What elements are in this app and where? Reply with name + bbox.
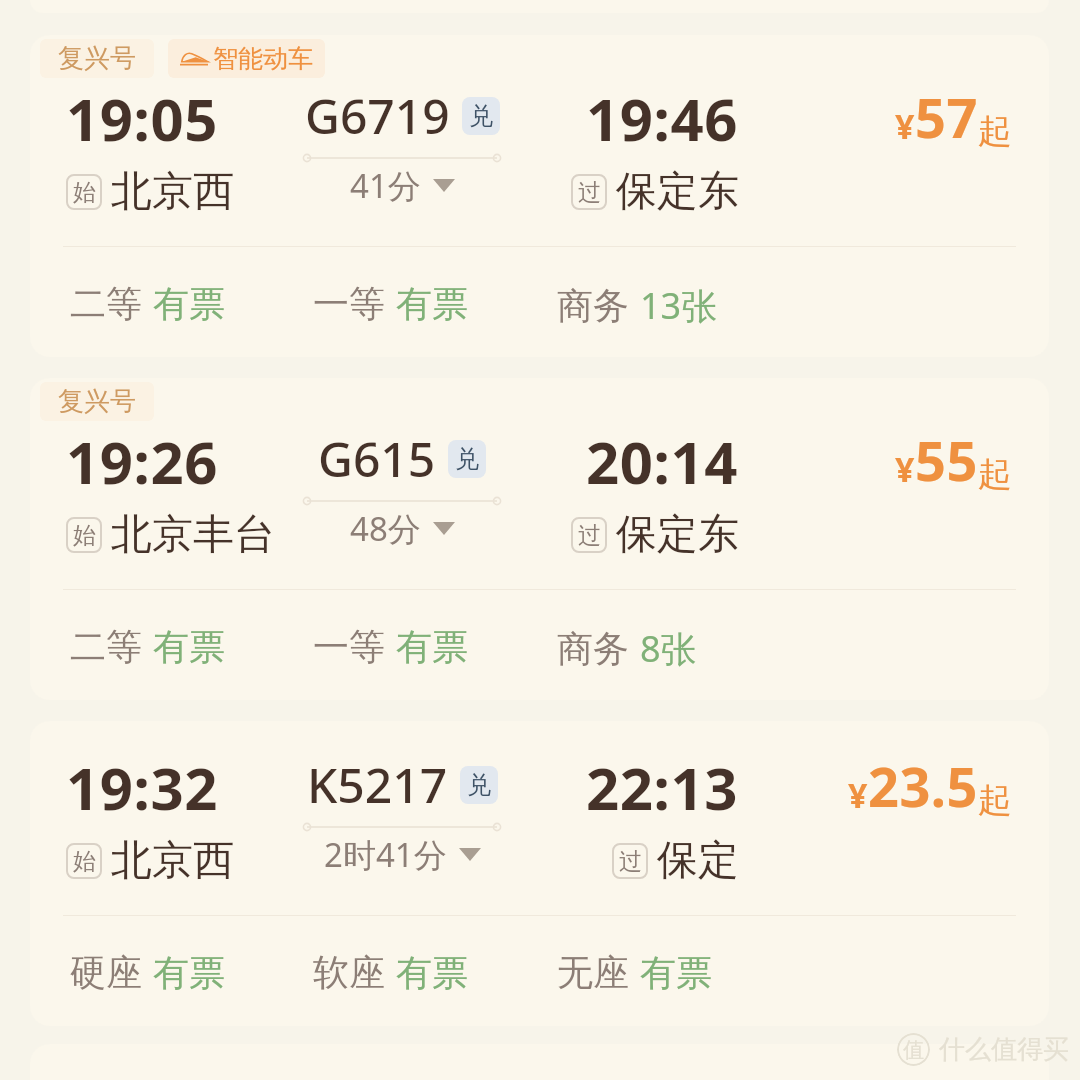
- button[interactable]: 无座: [557, 950, 712, 995]
- staticText: 智能动车: [213, 43, 313, 74]
- staticText: 始: [73, 521, 96, 550]
- staticText: 始: [73, 847, 96, 876]
- staticText: 复兴号: [58, 42, 136, 75]
- staticText: 商务: [557, 283, 629, 328]
- other: 智能动车: [180, 52, 208, 66]
- staticText: G615: [318, 426, 436, 491]
- staticText: 有票: [640, 950, 712, 995]
- staticText: 复兴号: [58, 385, 136, 418]
- staticText: 55: [915, 423, 978, 497]
- button[interactable]: 可兑换积分: [448, 440, 486, 478]
- staticText: 13张: [640, 281, 718, 330]
- button[interactable]: 可兑换积分: [462, 97, 500, 135]
- staticText: 20:14: [586, 422, 739, 501]
- staticText: 保定: [657, 835, 739, 887]
- button[interactable]: 商务: [557, 624, 697, 673]
- staticText: 19:05: [66, 79, 219, 158]
- staticText: 41分: [350, 163, 421, 208]
- other: 展开经停站: [433, 522, 455, 535]
- staticText: 有票: [396, 624, 468, 669]
- staticText: 北京丰台: [111, 509, 275, 561]
- staticText: 软座: [313, 950, 385, 995]
- button[interactable]: 二等: [70, 624, 225, 669]
- button[interactable]: 复兴号: [30, 378, 1049, 700]
- staticText: 始: [73, 178, 96, 207]
- button[interactable]: 一等: [313, 624, 468, 669]
- button[interactable]: 复兴号: [30, 35, 1049, 357]
- staticText: 8张: [640, 624, 697, 673]
- staticText: 48分: [350, 506, 421, 551]
- button[interactable]: 19:32: [30, 721, 1049, 1026]
- button[interactable]: 商务: [557, 281, 718, 330]
- button[interactable]: 可兑换积分: [460, 766, 498, 804]
- staticText: 兑: [469, 101, 493, 131]
- staticText: 有票: [396, 950, 468, 995]
- button[interactable]: 一等: [313, 281, 468, 326]
- button[interactable]: 二等: [70, 281, 225, 326]
- staticText: 起: [978, 453, 1012, 496]
- other: 展开经停站: [459, 848, 481, 861]
- staticText: 值: [903, 1037, 924, 1063]
- button[interactable]: 软座: [313, 950, 468, 995]
- staticText: 过: [578, 521, 601, 550]
- staticText: 保定东: [616, 166, 739, 218]
- button[interactable]: Next train result: [30, 1044, 1049, 1080]
- staticText: ¥: [848, 772, 868, 818]
- staticText: 有票: [153, 950, 225, 995]
- other: 展开经停站: [433, 179, 455, 192]
- staticText: 保定东: [616, 509, 739, 561]
- staticText: 什么值得买: [939, 1033, 1069, 1066]
- staticText: 二等: [70, 624, 142, 669]
- staticText: 商务: [557, 626, 629, 671]
- staticText: 北京西: [111, 835, 234, 887]
- staticText: 过: [578, 178, 601, 207]
- button[interactable]: 2时41分: [324, 832, 481, 877]
- staticText: 硬座: [70, 950, 142, 995]
- staticText: 有票: [153, 624, 225, 669]
- staticText: ¥: [895, 446, 915, 492]
- staticText: 19:26: [66, 422, 219, 501]
- staticText: 有票: [396, 281, 468, 326]
- staticText: 兑: [455, 444, 479, 474]
- button[interactable]: 41分: [350, 163, 455, 208]
- staticText: G6719: [305, 83, 450, 148]
- staticText: 2时41分: [324, 832, 447, 877]
- staticText: 起: [978, 779, 1012, 822]
- staticText: 兑: [467, 770, 491, 800]
- staticText: 北京西: [111, 166, 234, 218]
- staticText: 19:46: [586, 79, 739, 158]
- staticText: 23.5: [868, 749, 978, 823]
- staticText: 有票: [153, 281, 225, 326]
- staticText: ¥: [895, 103, 915, 149]
- staticText: 起: [978, 110, 1012, 153]
- button[interactable]: 复兴号: [40, 39, 154, 78]
- staticText: 一等: [313, 281, 385, 326]
- staticText: 过: [619, 847, 642, 876]
- staticText: 22:13: [586, 748, 739, 827]
- staticText: 二等: [70, 281, 142, 326]
- button[interactable]: 复兴号: [40, 382, 154, 421]
- staticText: 19:32: [66, 748, 219, 827]
- staticText: 无座: [557, 950, 629, 995]
- staticText: 57: [915, 80, 978, 154]
- staticText: 一等: [313, 624, 385, 669]
- button[interactable]: 48分: [350, 506, 455, 551]
- button[interactable]: 智能动车: [168, 39, 325, 78]
- button[interactable]: 硬座: [70, 950, 225, 995]
- staticText: K5217: [307, 752, 448, 817]
